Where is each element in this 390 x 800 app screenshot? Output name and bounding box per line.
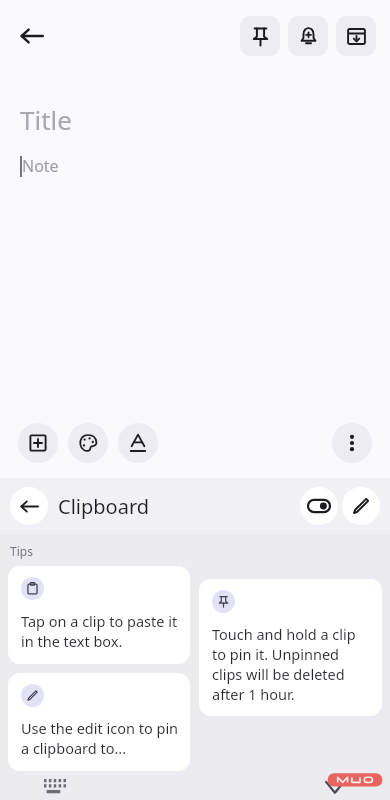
button[interactable]: Add attachment bbox=[18, 423, 58, 463]
button[interactable]: Title bbox=[20, 102, 370, 137]
staticText: Tips bbox=[10, 543, 33, 559]
staticText: Tap on a clip to paste it in the text bo… bbox=[21, 611, 179, 651]
button[interactable]: Keyboard bbox=[40, 771, 70, 800]
button[interactable]: Clipboard bbox=[58, 493, 150, 520]
button[interactable]: Colour palette bbox=[68, 423, 108, 463]
button[interactable]: Touch and hold a clip to pin it. Unpinne… bbox=[199, 579, 382, 716]
button[interactable]: Back bbox=[10, 487, 48, 525]
button[interactable]: Add reminder bbox=[288, 16, 328, 56]
button[interactable]: More options bbox=[332, 423, 372, 463]
button[interactable]: Text formatting bbox=[118, 423, 158, 463]
staticText: Use the edit icon to pin a clipboard to.… bbox=[21, 718, 179, 758]
button[interactable]: Archive bbox=[336, 16, 376, 56]
staticText: Title bbox=[20, 102, 72, 137]
button[interactable]: Back bbox=[8, 12, 56, 60]
button[interactable]: Use the edit icon to pin a clipboard to.… bbox=[8, 673, 190, 771]
staticText: Note bbox=[22, 155, 59, 177]
button[interactable]: Note bbox=[20, 155, 370, 177]
button[interactable]: Toggle clipboard bbox=[300, 487, 338, 525]
button[interactable]: Tap on a clip to paste it in the text bo… bbox=[8, 566, 190, 664]
button[interactable]: Edit bbox=[342, 487, 380, 525]
button[interactable]: Pin note bbox=[240, 16, 280, 56]
staticText: Touch and hold a clip to pin it. Unpinne… bbox=[212, 624, 371, 704]
